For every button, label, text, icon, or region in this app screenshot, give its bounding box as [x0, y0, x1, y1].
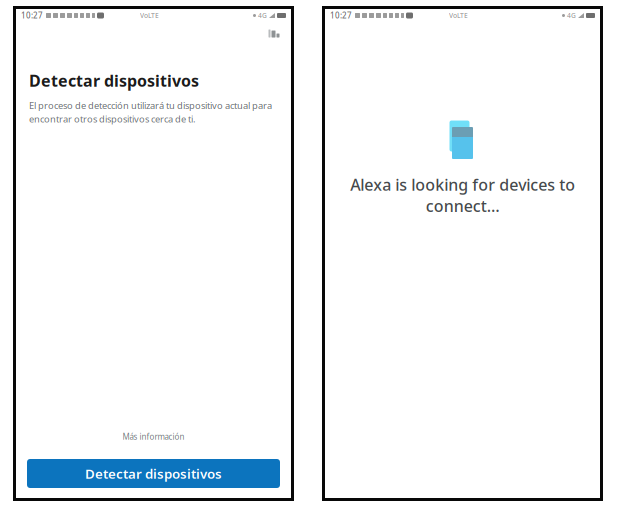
- staticText: Alexa is looking for devices to connect…: [350, 174, 575, 216]
- staticText: VoLTE: [140, 11, 159, 20]
- staticText: VoLTE: [449, 11, 468, 20]
- staticText: El proceso de detección utilizará tu dis…: [29, 99, 272, 125]
- button[interactable]: Usage: [264, 25, 284, 41]
- staticText: 4G: [258, 11, 267, 20]
- staticText: 4G: [567, 11, 576, 20]
- button[interactable]: Detectar dispositivos: [27, 459, 280, 488]
- button[interactable]: Más información: [16, 427, 291, 446]
- staticText: Detectar dispositivos: [85, 465, 222, 482]
- staticText: Más información: [122, 431, 184, 442]
- staticText: Detectar dispositivos: [29, 70, 199, 91]
- staticText: 10:27: [330, 10, 352, 21]
- staticText: 10:27: [21, 10, 43, 21]
